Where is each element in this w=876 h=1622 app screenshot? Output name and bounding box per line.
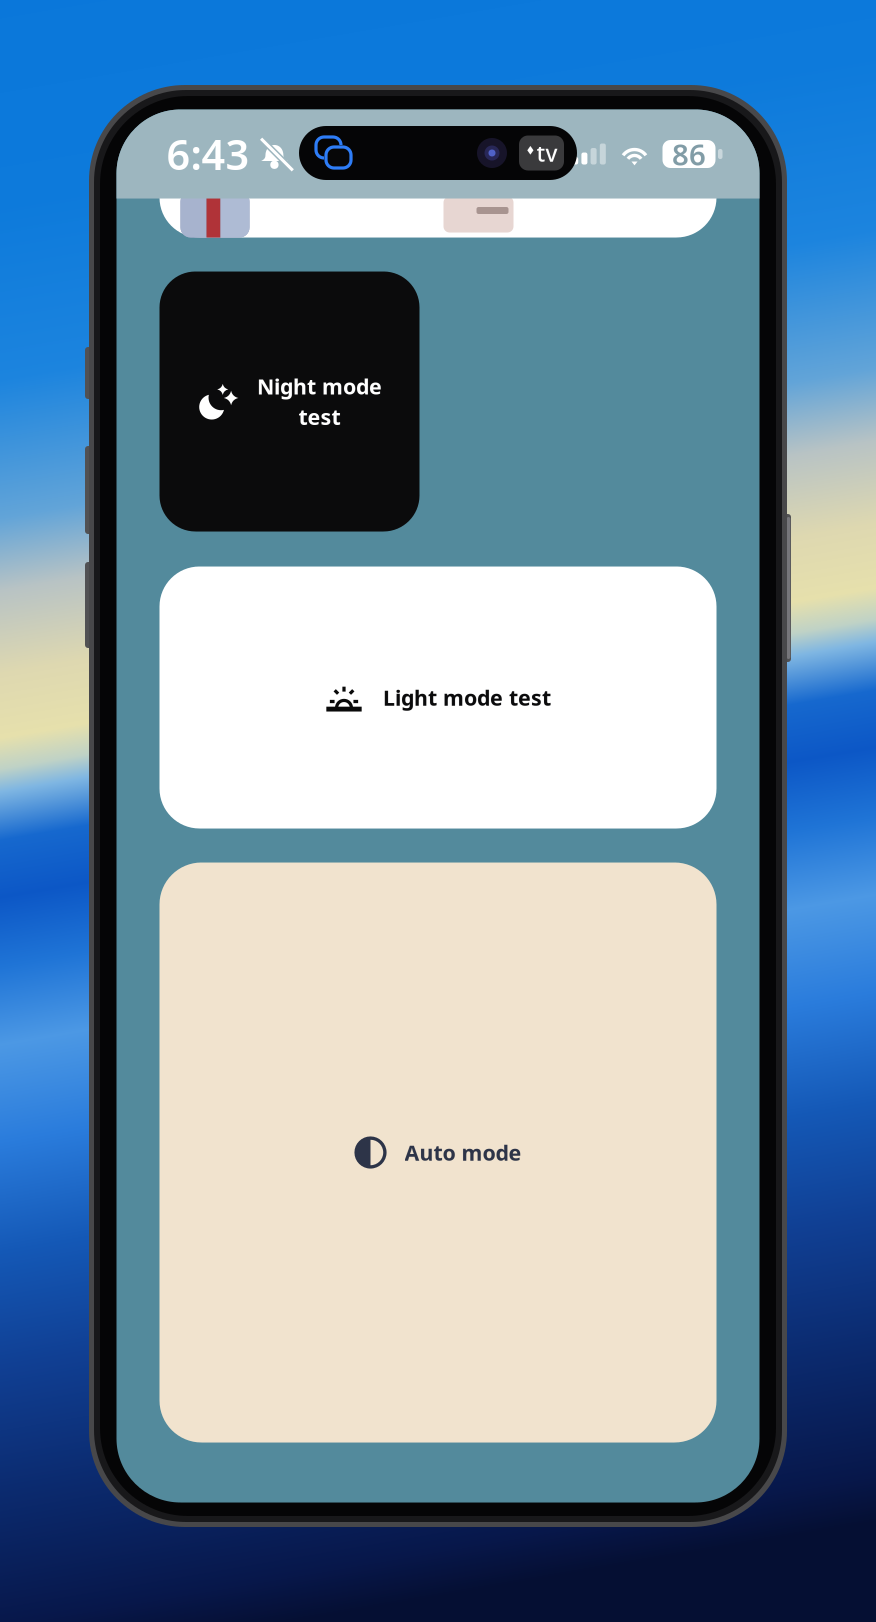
staticText: Night mode xyxy=(257,372,382,400)
staticText: 6:43 xyxy=(166,127,249,181)
staticText: 86 xyxy=(672,134,706,173)
staticText:  xyxy=(525,143,535,162)
button[interactable]: Auto mode xyxy=(159,862,716,1442)
staticText: Auto mode xyxy=(404,1138,521,1167)
button[interactable]: Light mode test xyxy=(159,566,716,828)
staticText: tv xyxy=(536,138,557,168)
staticText: Light mode test xyxy=(383,683,551,712)
button[interactable]: Night mode xyxy=(159,271,419,531)
staticText: test xyxy=(298,402,340,431)
